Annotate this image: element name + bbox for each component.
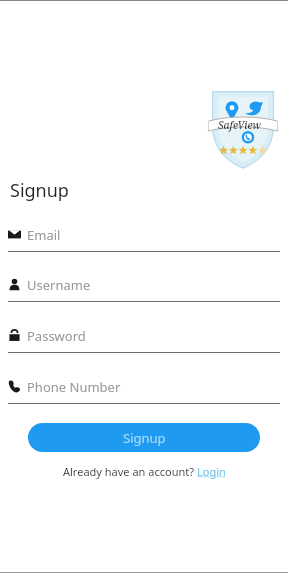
button[interactable]: Email [6,224,282,254]
staticText: Password [27,327,86,345]
button[interactable]: Password [6,325,282,355]
staticText: SafeView [218,118,261,132]
other: Password [8,329,21,342]
staticText: Login [197,464,226,479]
button[interactable]: Username [6,274,282,304]
staticText: Signup [123,429,166,447]
staticText: Already have an account? [63,464,197,479]
other: Username [8,278,21,291]
button[interactable]: Phone Number [6,376,282,406]
staticText: Signup [10,178,69,203]
button[interactable]: Signup [28,423,260,452]
staticText: Username [27,276,91,294]
button[interactable]: Login [197,464,226,479]
other: Phone Number [8,380,21,393]
other: Email [8,228,21,241]
staticText: Email [27,226,61,244]
staticText: Phone Number [27,378,121,396]
